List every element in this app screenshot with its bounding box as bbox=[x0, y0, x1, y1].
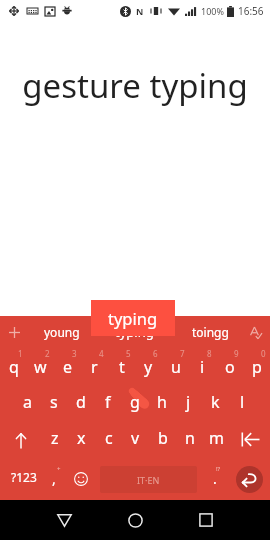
button[interactable]: 2 bbox=[27, 345, 54, 383]
staticText: 3 bbox=[72, 348, 77, 359]
staticText: 8 bbox=[207, 348, 212, 359]
staticText: q bbox=[9, 356, 19, 378]
button[interactable]: k bbox=[202, 383, 229, 421]
staticText: ?123 bbox=[11, 469, 37, 485]
staticText: c bbox=[105, 427, 113, 449]
staticText: w bbox=[34, 356, 47, 378]
staticText: 5 bbox=[126, 348, 131, 359]
button[interactable]: s bbox=[40, 383, 67, 421]
button[interactable]: ?123 bbox=[1, 460, 47, 498]
button[interactable]: Backspace bbox=[230, 419, 270, 457]
staticText: 7 bbox=[180, 348, 185, 359]
staticText: 0 bbox=[261, 348, 266, 359]
staticText: z bbox=[51, 427, 59, 449]
button[interactable]: typing bbox=[92, 316, 176, 348]
staticText: young bbox=[44, 324, 80, 340]
staticText: u bbox=[171, 356, 181, 378]
button[interactable]: 6 bbox=[135, 345, 162, 383]
staticText: s bbox=[50, 391, 58, 413]
button[interactable]: Emoji bbox=[66, 460, 96, 498]
staticText: gesture typing bbox=[0, 63, 270, 108]
button[interactable]: v bbox=[122, 419, 149, 457]
staticText: y bbox=[144, 356, 153, 378]
staticText: 100% bbox=[201, 5, 224, 17]
button[interactable]: 9 bbox=[216, 345, 243, 383]
button[interactable]: b bbox=[149, 419, 176, 457]
staticText: + bbox=[57, 465, 61, 473]
staticText: 2 bbox=[45, 348, 50, 359]
staticText: h bbox=[157, 391, 167, 413]
staticText: f bbox=[105, 391, 111, 413]
staticText: n bbox=[185, 427, 195, 449]
button[interactable]: g bbox=[121, 383, 148, 421]
staticText: a bbox=[23, 391, 32, 413]
button[interactable]: typing bbox=[91, 300, 175, 336]
staticText: . bbox=[213, 469, 217, 488]
button[interactable]: n bbox=[176, 419, 203, 457]
button[interactable]: c bbox=[95, 419, 122, 457]
staticText: x bbox=[77, 427, 86, 449]
button[interactable]: l bbox=[229, 383, 256, 421]
staticText: N bbox=[136, 5, 144, 17]
button[interactable]: 1 bbox=[0, 345, 27, 383]
button[interactable]: 8 bbox=[189, 345, 216, 383]
staticText: o bbox=[225, 356, 235, 378]
button[interactable]: young bbox=[30, 316, 94, 348]
button[interactable]: IT·EN bbox=[100, 466, 197, 493]
button[interactable]: 4 bbox=[81, 345, 108, 383]
staticText: d bbox=[76, 391, 86, 413]
staticText: v bbox=[131, 427, 140, 449]
button[interactable]: m bbox=[203, 419, 230, 457]
button[interactable]: 7 bbox=[162, 345, 189, 383]
staticText: r bbox=[91, 356, 98, 378]
button[interactable]: 0 bbox=[243, 345, 270, 383]
staticText: 4 bbox=[99, 348, 104, 359]
button[interactable]: Enter bbox=[230, 460, 270, 498]
button[interactable]: Recents bbox=[180, 500, 232, 540]
button[interactable]: j bbox=[175, 383, 202, 421]
button[interactable]: Home bbox=[109, 500, 161, 540]
staticText: typing bbox=[108, 307, 158, 329]
staticText: IT·EN bbox=[137, 474, 160, 486]
staticText: i bbox=[200, 356, 205, 378]
staticText: 1 bbox=[18, 348, 23, 359]
button[interactable]: . bbox=[200, 460, 230, 498]
staticText: 6 bbox=[153, 348, 158, 359]
staticText: p bbox=[252, 356, 262, 378]
staticText: b bbox=[158, 427, 168, 449]
staticText: k bbox=[211, 391, 220, 413]
button[interactable]: a bbox=[14, 383, 40, 421]
button[interactable]: 3 bbox=[54, 345, 81, 383]
button[interactable]: f bbox=[94, 383, 121, 421]
staticText: g bbox=[130, 391, 140, 413]
staticText: e bbox=[63, 356, 73, 378]
staticText: !? bbox=[216, 465, 221, 473]
staticText: 16:56 bbox=[238, 4, 264, 18]
staticText: 9 bbox=[234, 348, 239, 359]
button[interactable]: , bbox=[40, 460, 67, 498]
staticText: , bbox=[52, 469, 56, 488]
button[interactable]: d bbox=[67, 383, 94, 421]
staticText: typing bbox=[115, 323, 154, 341]
button[interactable]: Add word bbox=[0, 316, 28, 348]
button[interactable]: x bbox=[68, 419, 95, 457]
button[interactable]: 5 bbox=[108, 345, 135, 383]
button[interactable]: Back bbox=[38, 500, 90, 540]
staticText: l bbox=[240, 391, 245, 413]
button[interactable]: Shift bbox=[0, 419, 41, 457]
staticText: t bbox=[119, 356, 125, 378]
button[interactable]: z bbox=[41, 419, 68, 457]
staticText: toingg bbox=[192, 324, 229, 340]
button[interactable]: h bbox=[148, 383, 175, 421]
button[interactable]: toingg bbox=[174, 316, 246, 348]
staticText: m bbox=[209, 427, 224, 449]
button[interactable]: Spell check bbox=[240, 316, 270, 348]
staticText: j bbox=[186, 391, 191, 413]
